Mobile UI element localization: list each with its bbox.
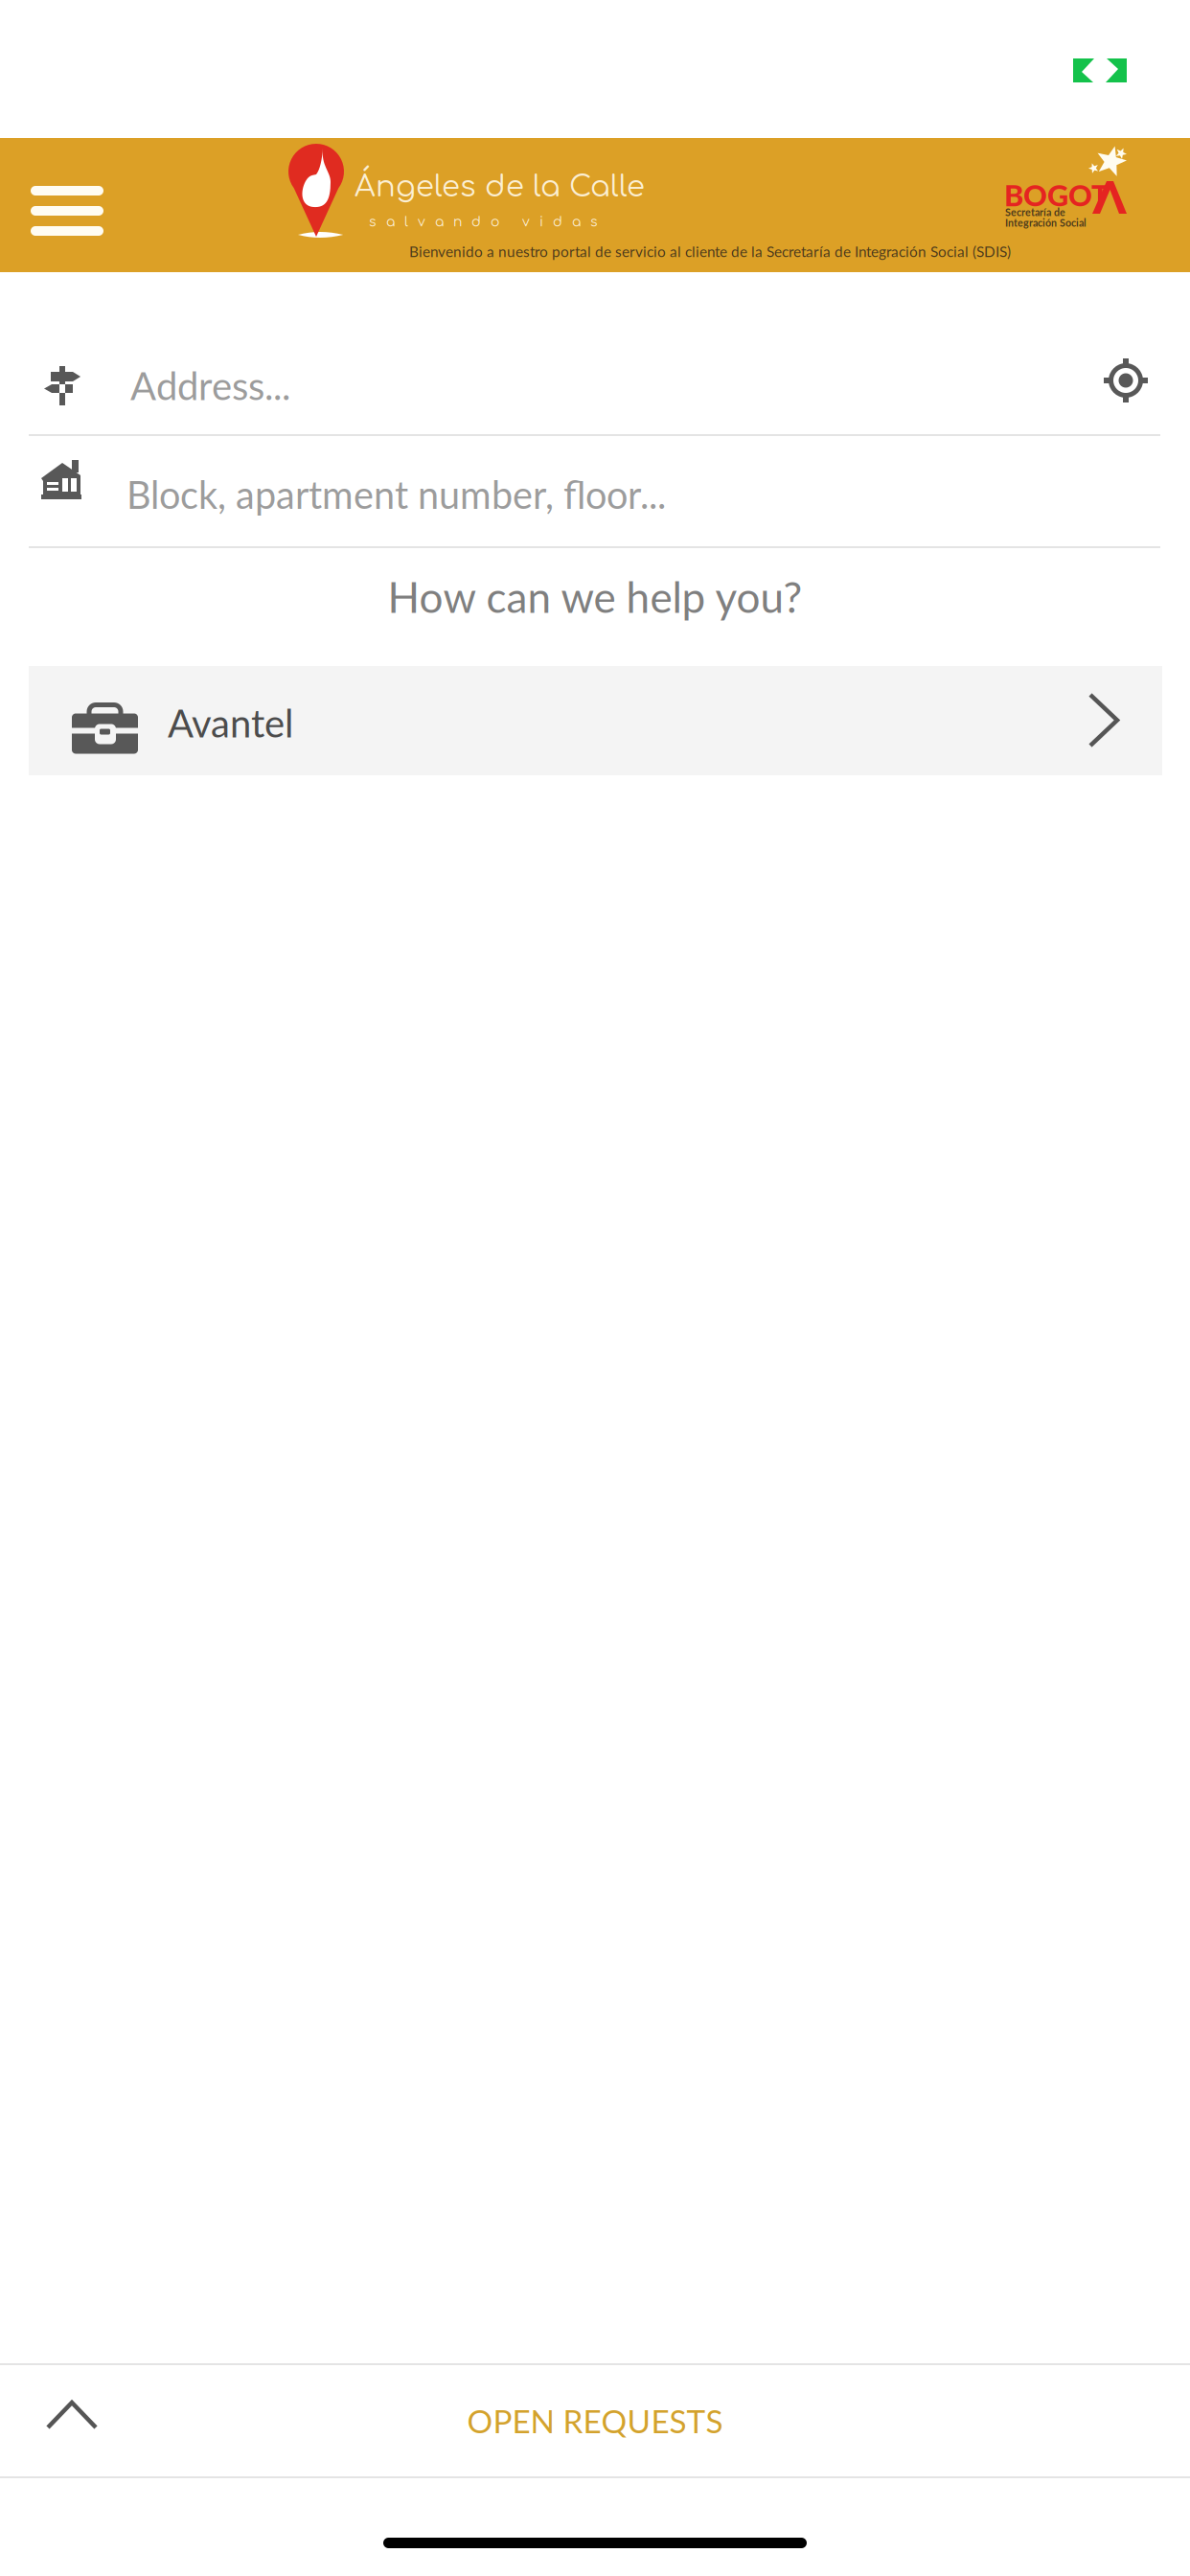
button[interactable]: Address... <box>0 273 1054 434</box>
staticText: How can we help you? <box>388 571 802 622</box>
staticText: s a l v a n d o v i d a s <box>369 215 598 230</box>
staticText: Bienvenido a nuestro portal de servicio … <box>409 242 1011 260</box>
staticText: Secretaría de <box>1005 206 1065 218</box>
staticText: Block, apartment number, floor... <box>126 471 666 517</box>
staticText: BOGOT <box>1004 177 1110 213</box>
button[interactable]: Avantel <box>29 666 1162 775</box>
button[interactable]: Menu <box>4 159 130 263</box>
staticText: Integración Social <box>1005 217 1087 229</box>
button[interactable]: Use current location <box>1104 358 1148 402</box>
staticText: Ángeles de la Calle <box>355 171 645 203</box>
button[interactable]: OPEN REQUESTS <box>0 2365 1190 2476</box>
staticText: Address... <box>130 362 290 408</box>
button[interactable]: Block, apartment number, floor... <box>0 436 1190 546</box>
staticText: OPEN REQUESTS <box>467 2402 723 2440</box>
staticText: Avantel <box>168 700 293 746</box>
